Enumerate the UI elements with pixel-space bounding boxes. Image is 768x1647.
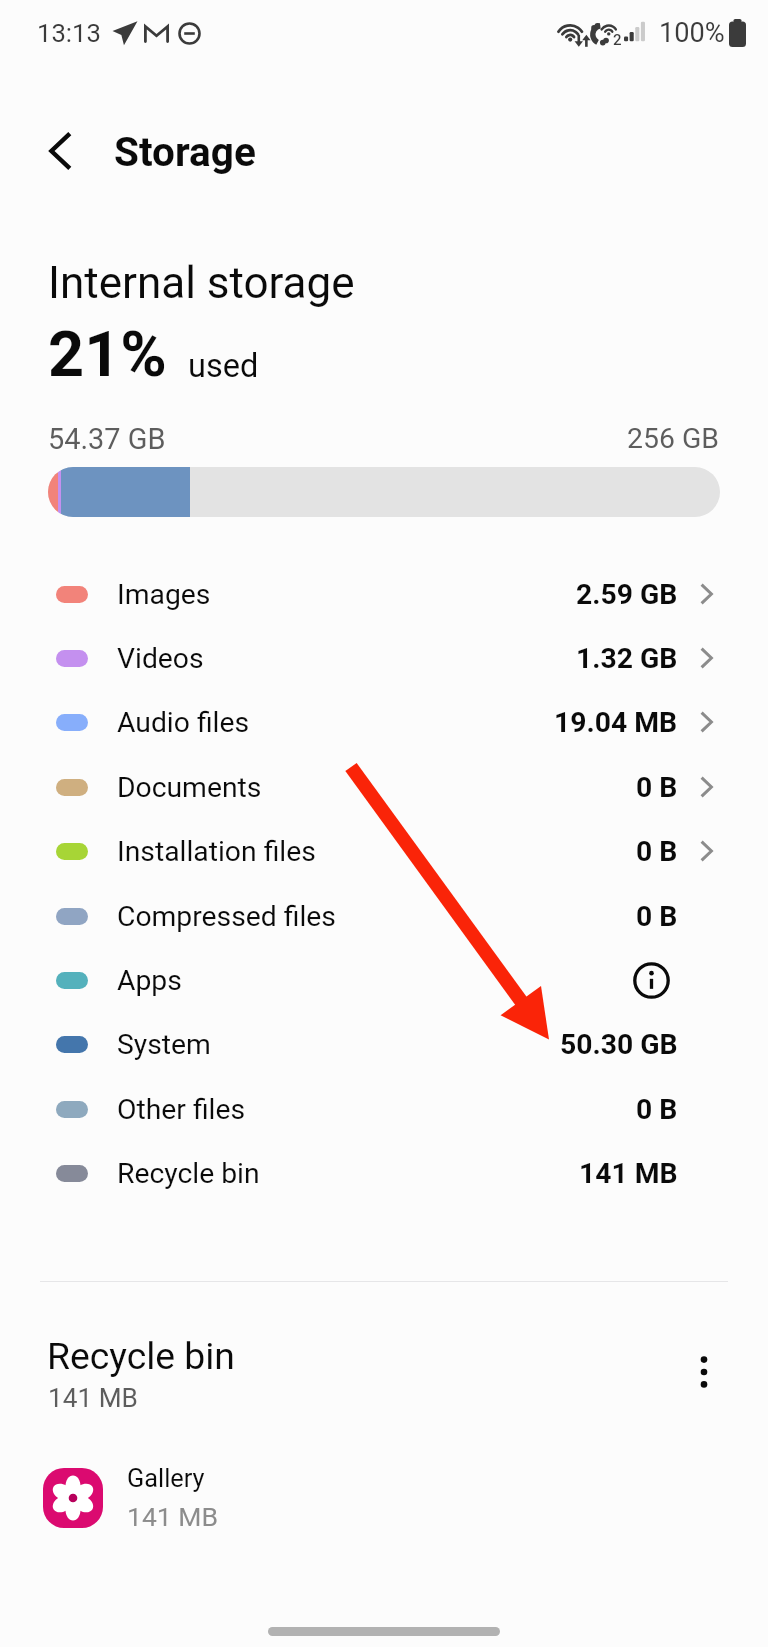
staticText: 21% xyxy=(48,318,167,392)
staticText: 141 MB xyxy=(579,1157,678,1190)
button[interactable]: Videos xyxy=(0,626,768,690)
button[interactable]: About apps storage xyxy=(633,948,768,1012)
staticText: Apps xyxy=(117,964,182,997)
staticText: Recycle bin xyxy=(47,1334,235,1378)
staticText: Installation files xyxy=(117,835,316,868)
button[interactable]: More options xyxy=(675,1343,733,1401)
button[interactable]: Apps xyxy=(0,948,768,1012)
staticText: 13:13 xyxy=(37,18,101,48)
staticText: Storage xyxy=(114,128,256,175)
button[interactable]: Gallery xyxy=(0,1462,768,1534)
staticText: System xyxy=(117,1028,211,1061)
staticText: Images xyxy=(117,578,211,611)
button[interactable]: Other files xyxy=(0,1077,768,1141)
staticText: 256 GB xyxy=(627,422,719,455)
staticText: 1.32 GB xyxy=(576,642,678,675)
staticText: 0 B xyxy=(636,835,678,868)
staticText: Documents xyxy=(117,771,262,804)
button[interactable]: Installation files xyxy=(0,819,768,883)
staticText: 19.04 MB xyxy=(554,706,678,739)
staticText: 2.59 GB xyxy=(576,578,678,611)
staticText: Other files xyxy=(117,1093,246,1126)
staticText: Compressed files xyxy=(117,900,336,933)
button[interactable]: System xyxy=(0,1012,768,1076)
staticText: 0 B xyxy=(636,1093,678,1126)
staticText: 50.30 GB xyxy=(560,1028,678,1061)
staticText: 54.37 GB xyxy=(48,422,166,456)
staticText: 0 B xyxy=(636,900,678,933)
staticText: used xyxy=(188,347,259,385)
button[interactable]: Audio files xyxy=(0,690,768,754)
staticText: 2 xyxy=(613,31,622,49)
staticText: 141 MB xyxy=(48,1383,138,1414)
button[interactable]: Recycle bin xyxy=(0,1141,768,1205)
staticText: Gallery xyxy=(127,1464,205,1494)
staticText: Videos xyxy=(117,642,204,675)
staticText: Audio files xyxy=(117,706,250,739)
staticText: Recycle bin xyxy=(117,1157,260,1190)
staticText: 100% xyxy=(659,17,725,49)
staticText: 0 B xyxy=(636,771,678,804)
button[interactable]: Navigate up xyxy=(28,118,94,184)
staticText: 141 MB xyxy=(127,1501,218,1532)
button[interactable]: Documents xyxy=(0,755,768,819)
staticText: Internal storage xyxy=(48,257,355,309)
button[interactable]: Images xyxy=(0,562,768,626)
button[interactable]: Compressed files xyxy=(0,884,768,948)
